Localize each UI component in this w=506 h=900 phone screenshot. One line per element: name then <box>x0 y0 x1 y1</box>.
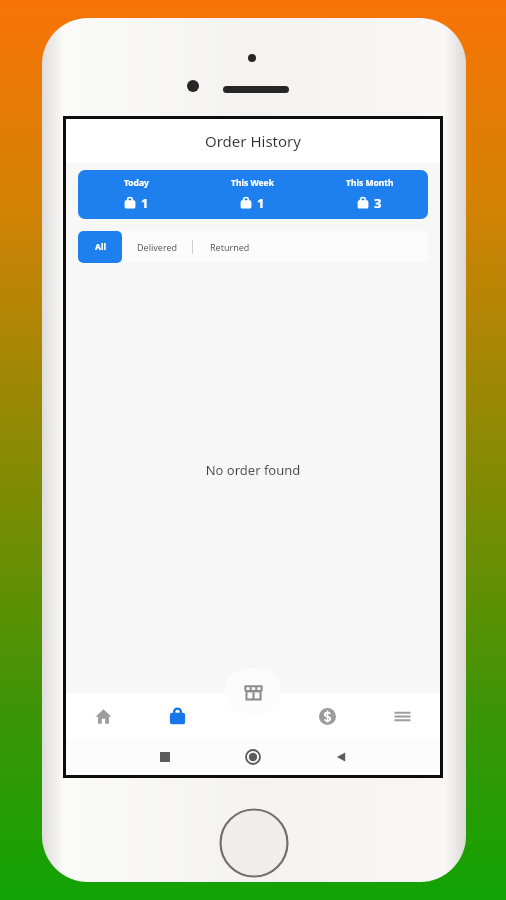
button[interactable]: Delivered <box>122 231 192 263</box>
staticText: All <box>95 241 106 253</box>
button[interactable]: All <box>78 231 122 263</box>
staticText: No order found <box>66 461 440 479</box>
button[interactable]: Recents <box>121 739 209 775</box>
staticText: Returned <box>210 241 250 253</box>
staticText: Order History <box>205 131 301 151</box>
button[interactable]: Store <box>225 668 281 714</box>
button[interactable]: Payments <box>290 693 365 739</box>
staticText: 3 <box>374 194 382 212</box>
button[interactable]: Orders <box>140 693 215 739</box>
staticText: Today <box>124 177 149 189</box>
staticText: This Week <box>231 177 274 189</box>
button[interactable]: This Month <box>311 170 428 219</box>
button[interactable]: Returned <box>193 231 267 263</box>
staticText: This Month <box>346 177 394 189</box>
staticText: 1 <box>141 194 149 212</box>
staticText: 1 <box>257 194 265 212</box>
button[interactable]: Menu <box>365 693 440 739</box>
button[interactable]: Home <box>66 693 140 739</box>
button[interactable]: Home <box>209 739 297 775</box>
staticText: Delivered <box>137 241 178 253</box>
button[interactable]: Back <box>297 739 385 775</box>
button[interactable]: This Week <box>194 170 311 219</box>
button[interactable]: Today <box>78 170 194 219</box>
